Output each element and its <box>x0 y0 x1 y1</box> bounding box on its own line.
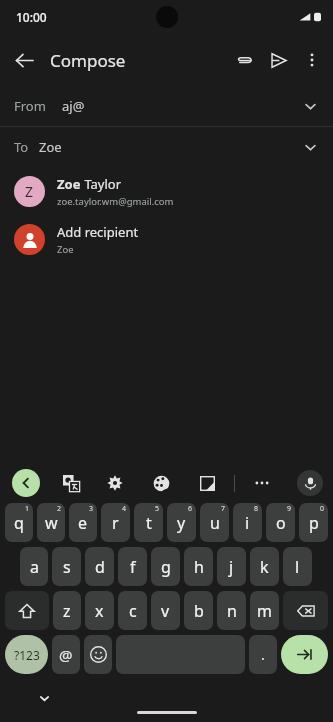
button[interactable]: @ <box>52 635 80 674</box>
staticText: Zoe <box>39 138 62 156</box>
staticText: 1 <box>25 504 30 514</box>
staticText: l <box>295 556 300 578</box>
button[interactable]: q <box>5 503 33 542</box>
staticText: q <box>14 512 24 534</box>
button[interactable]: g <box>151 547 180 586</box>
button[interactable]: m <box>250 591 279 630</box>
button[interactable]: o <box>266 503 295 542</box>
button[interactable]: Z <box>0 167 333 215</box>
staticText: 3 <box>89 504 94 514</box>
staticText: From <box>14 97 46 115</box>
button[interactable]: b <box>184 591 213 630</box>
staticText: . <box>261 645 265 664</box>
staticText: @ <box>59 645 73 665</box>
staticText: b <box>194 600 204 622</box>
button[interactable]: d <box>85 547 114 586</box>
button[interactable]: Enter <box>281 635 328 674</box>
button[interactable]: Hide keyboard <box>34 688 54 708</box>
button[interactable]: e <box>69 503 97 542</box>
staticText: e <box>78 512 88 534</box>
button[interactable]: Translate <box>58 470 84 496</box>
button[interactable]: Back <box>6 42 42 78</box>
button[interactable]: One handed mode <box>194 470 220 496</box>
staticText: Zoe <box>57 243 74 256</box>
staticText: o <box>276 512 286 534</box>
button[interactable]: j <box>217 547 246 586</box>
staticText: zoe.taylor.wm@gmail.com <box>57 195 174 208</box>
button[interactable]: a <box>20 547 48 586</box>
staticText: p <box>309 512 319 534</box>
staticText: h <box>194 556 204 578</box>
button[interactable]: p <box>299 503 328 542</box>
button[interactable]: x <box>85 591 114 630</box>
staticText: Zoe <box>57 175 81 193</box>
staticText: f <box>130 556 136 578</box>
button[interactable]: Theme <box>148 470 174 496</box>
staticText: 5 <box>155 504 160 514</box>
staticText: d <box>95 556 105 578</box>
button[interactable]: n <box>217 591 246 630</box>
button[interactable]: Space <box>116 635 245 674</box>
button[interactable]: i <box>233 503 262 542</box>
staticText: c <box>129 600 137 622</box>
staticText: 10:00 <box>16 9 47 25</box>
staticText: Compose <box>50 49 126 72</box>
button[interactable]: k <box>250 547 279 586</box>
button[interactable]: Send <box>261 43 295 77</box>
staticText: j <box>229 556 234 578</box>
button[interactable]: f <box>118 547 147 586</box>
staticText: t <box>146 512 152 534</box>
staticText: 8 <box>254 504 259 514</box>
staticText: i <box>245 512 250 534</box>
staticText: 2 <box>57 504 62 514</box>
staticText: y <box>177 512 186 534</box>
staticText: z <box>63 600 71 622</box>
staticText: 9 <box>287 504 292 514</box>
staticText: ?123 <box>14 647 40 663</box>
button[interactable]: Shift <box>5 591 49 630</box>
button[interactable]: To <box>0 127 333 167</box>
button[interactable]: More options <box>295 43 329 77</box>
staticText: m <box>257 600 272 622</box>
button[interactable]: y <box>167 503 196 542</box>
button[interactable]: r <box>101 503 130 542</box>
staticText: a <box>30 556 39 578</box>
staticText: w <box>45 512 58 534</box>
button[interactable]: s <box>52 547 81 586</box>
staticText: x <box>95 600 104 622</box>
button[interactable]: c <box>118 591 147 630</box>
button[interactable]: Emoji <box>84 635 112 674</box>
button[interactable]: l <box>283 547 312 586</box>
staticText: k <box>260 556 269 578</box>
button[interactable]: Attach file <box>227 43 261 77</box>
button[interactable]: t <box>134 503 163 542</box>
staticText: 6 <box>188 504 193 514</box>
button[interactable]: . <box>249 635 277 674</box>
staticText: aj@ <box>62 97 85 115</box>
button[interactable]: u <box>200 503 229 542</box>
button[interactable]: More <box>249 470 275 496</box>
button[interactable]: w <box>37 503 65 542</box>
button[interactable]: Voice input <box>297 470 323 496</box>
staticText: r <box>112 512 119 534</box>
button[interactable]: h <box>184 547 213 586</box>
button[interactable]: ?123 <box>5 635 48 674</box>
button[interactable]: Settings <box>102 470 128 496</box>
staticText: s <box>63 556 71 578</box>
button[interactable]: Back <box>12 469 40 497</box>
button[interactable]: Add recipient <box>0 215 333 263</box>
staticText: 0 <box>320 504 325 514</box>
staticText: Z <box>25 182 34 201</box>
staticText: n <box>227 600 237 622</box>
staticText: v <box>161 600 170 622</box>
staticText: Taylor <box>81 175 122 193</box>
staticText: g <box>161 556 171 578</box>
button[interactable]: v <box>151 591 180 630</box>
button[interactable]: Backspace <box>283 591 328 630</box>
staticText: 4 <box>122 504 127 514</box>
staticText: To <box>14 138 29 156</box>
button[interactable]: z <box>53 591 81 630</box>
button[interactable]: From <box>0 86 333 126</box>
staticText: u <box>210 512 220 534</box>
staticText: 7 <box>221 504 226 514</box>
